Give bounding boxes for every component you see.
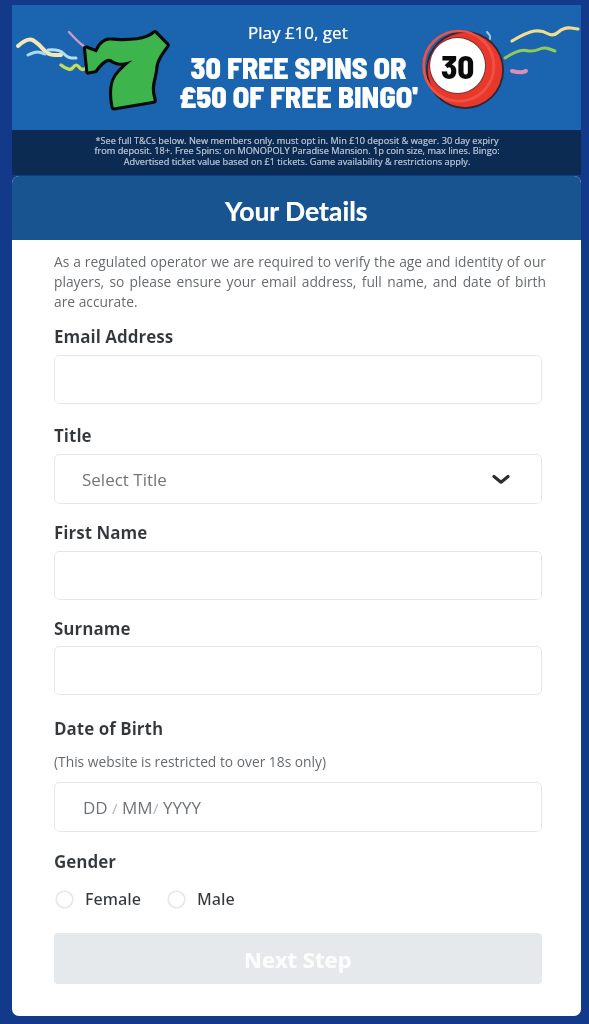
staticText: Title [54, 424, 92, 447]
staticText: MM [122, 796, 153, 819]
button[interactable] [54, 646, 542, 695]
staticText: DD [83, 796, 108, 819]
staticText: Male [197, 888, 235, 910]
staticText: (This website is restricted to over 18s … [54, 752, 327, 771]
button[interactable]: Select Title [54, 454, 542, 504]
button[interactable]: Female [55, 884, 145, 914]
staticText: / [108, 798, 122, 818]
staticText: YYYY [163, 796, 202, 819]
button[interactable] [54, 355, 542, 404]
staticText: / [153, 798, 163, 818]
staticText: Surname [54, 617, 131, 640]
button[interactable] [54, 551, 542, 600]
other: Open title dropdown [493, 471, 509, 487]
staticText: Date of Birth [54, 717, 164, 740]
staticText: Email Address [54, 325, 174, 348]
staticText: 30 [441, 46, 475, 86]
staticText: 30 FREE SPINS OR £50 OF FREE BINGO' [179, 49, 418, 114]
button[interactable]: DD [54, 782, 542, 832]
button[interactable]: Next Step [54, 933, 542, 984]
staticText: Select Title [82, 468, 167, 491]
staticText: Your Details [225, 195, 368, 227]
staticText: First Name [54, 521, 148, 544]
staticText: Next Step [244, 944, 352, 974]
staticText: Gender [54, 850, 117, 873]
staticText: As a regulated operator we are required … [54, 252, 546, 311]
staticText: *See full T&Cs below. New members only. … [91, 134, 503, 168]
button[interactable]: Male [167, 884, 239, 914]
staticText: Play £10, get [248, 21, 348, 44]
staticText: Female [85, 888, 141, 910]
